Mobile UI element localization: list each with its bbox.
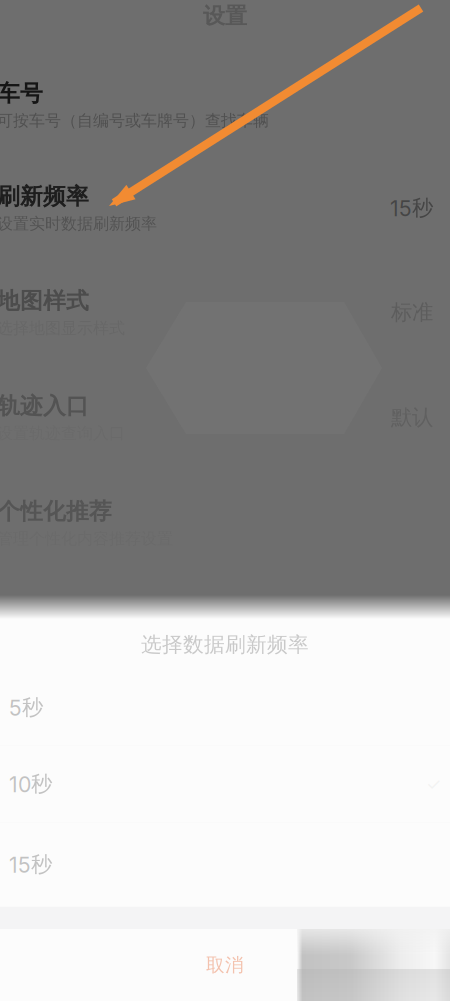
staticText: 15秒 [390, 195, 433, 221]
staticText: 标准 [391, 299, 433, 326]
staticText: 设置 [203, 2, 247, 30]
button[interactable]: 个性化推荐 [0, 471, 450, 575]
staticText: 取消 [206, 953, 244, 977]
button[interactable]: 轨迹入口 [0, 364, 450, 471]
staticText: 轨迹入口 [0, 392, 89, 420]
staticText: 5秒 [9, 694, 43, 721]
button[interactable]: 地图样式 [0, 261, 450, 364]
staticText: 地图样式 [0, 287, 89, 315]
staticText: 默认 [391, 404, 433, 431]
button[interactable]: 取消 [0, 929, 450, 1001]
staticText: 15秒 [9, 851, 52, 878]
button[interactable]: 刷新频率 [0, 155, 450, 261]
staticText: 个性化推荐 [0, 497, 112, 526]
staticText: 刷新频率 [0, 182, 89, 211]
staticText: 车号 [0, 79, 43, 108]
button[interactable]: 5秒 [0, 670, 450, 746]
staticText: 选择数据刷新频率 [141, 631, 309, 657]
button[interactable]: 15秒 [0, 823, 450, 907]
staticText: 10秒 [9, 771, 52, 797]
button[interactable]: 10秒 [0, 746, 450, 823]
staticText: 可按车号（自编号或车牌号）查找车辆 [0, 111, 269, 131]
button[interactable]: 车号 [0, 55, 450, 155]
staticText: 设置实时数据刷新频率 [0, 214, 157, 234]
